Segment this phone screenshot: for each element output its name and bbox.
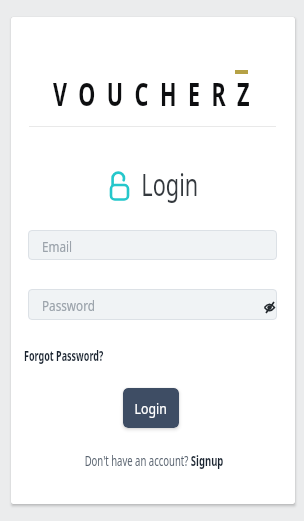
button[interactable]: Email (28, 230, 277, 260)
button[interactable]: Login (123, 388, 179, 428)
staticText: Login (135, 398, 167, 418)
staticText: Email (42, 236, 72, 256)
button[interactable]: Don't have an account? Signup (85, 451, 223, 470)
staticText: VOUCHERZ (42, 72, 272, 116)
staticText: Login (141, 163, 199, 205)
staticText: Password (42, 295, 95, 315)
button[interactable]: Forgot Password? (24, 345, 104, 365)
button[interactable]: Password (28, 289, 277, 320)
